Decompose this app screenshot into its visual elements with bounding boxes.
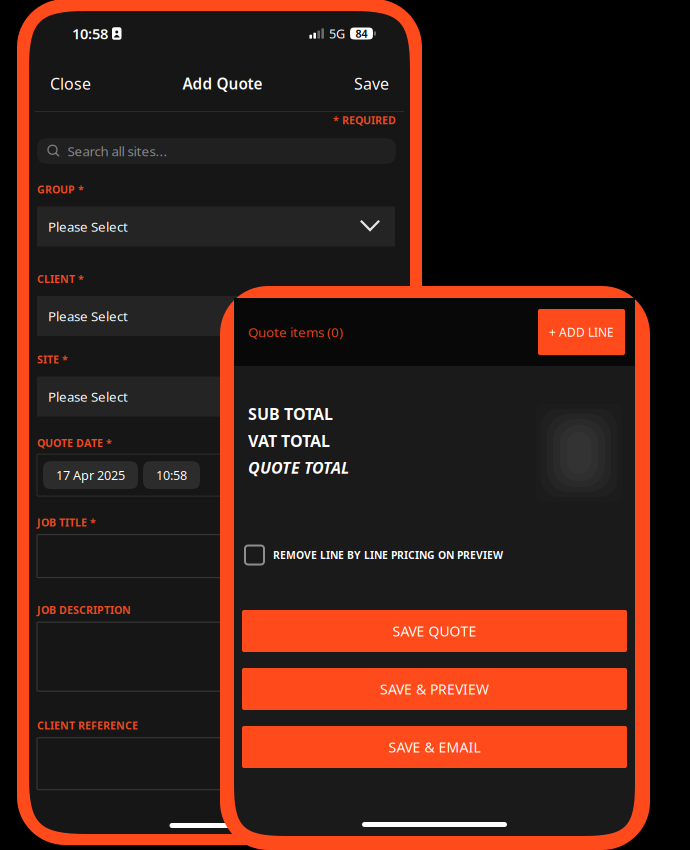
staticText: 5G xyxy=(329,25,345,42)
button[interactable]: Save xyxy=(348,64,395,103)
staticText: * REQUIRED xyxy=(333,113,396,127)
staticText: Quote items (0) xyxy=(248,323,343,341)
staticText: 84 xyxy=(355,26,367,41)
staticText: SAVE QUOTE xyxy=(392,621,476,641)
button[interactable] xyxy=(37,622,395,691)
staticText: VAT TOTAL xyxy=(248,430,330,452)
button[interactable]: 17 Apr 2025 xyxy=(43,461,138,489)
button[interactable]: + ADD LINE xyxy=(538,309,625,355)
button[interactable]: SAVE & PREVIEW xyxy=(242,668,627,710)
staticText: JOB TITLE xyxy=(37,515,87,530)
staticText: SUB TOTAL xyxy=(248,403,333,425)
staticText: Please Select xyxy=(48,387,128,406)
button[interactable] xyxy=(37,738,395,790)
staticText: Close xyxy=(50,73,91,94)
staticText: SAVE & EMAIL xyxy=(388,737,480,757)
staticText: * xyxy=(90,515,96,530)
button[interactable]: SAVE & EMAIL xyxy=(242,726,627,768)
staticText: 10:58 xyxy=(72,23,108,43)
staticText: JOB DESCRIPTION xyxy=(37,603,131,617)
staticText: Please Select xyxy=(48,217,128,236)
staticText: 17 Apr 2025 xyxy=(56,466,125,484)
button[interactable]: Please Select xyxy=(37,296,395,336)
staticText: REMOVE LINE BY LINE PRICING ON PREVIEW xyxy=(273,548,503,562)
button[interactable] xyxy=(37,535,395,578)
staticText: * xyxy=(78,182,84,196)
button[interactable]: Please Select xyxy=(37,206,395,246)
staticText: 10:58 xyxy=(156,466,187,484)
button[interactable]: REMOVE LINE BY LINE PRICING ON PREVIEW xyxy=(234,535,635,575)
staticText: * xyxy=(106,436,112,450)
staticText: CLIENT REFERENCE xyxy=(37,718,138,733)
staticText: SAVE & PREVIEW xyxy=(380,679,489,699)
staticText: SITE xyxy=(37,352,59,367)
button[interactable]: Please Select xyxy=(37,377,395,417)
button[interactable]: 10:58 xyxy=(143,461,200,489)
staticText: * xyxy=(78,271,84,286)
staticText: Save xyxy=(354,73,389,94)
staticText: QUOTE TOTAL xyxy=(248,457,349,478)
staticText: Search all sites... xyxy=(67,142,167,160)
staticText: Add Quote xyxy=(182,73,262,94)
staticText: * xyxy=(62,352,68,367)
staticText: GROUP xyxy=(37,182,75,196)
staticText: + ADD LINE xyxy=(549,324,614,340)
staticText: CLIENT xyxy=(37,271,75,286)
staticText: Please Select xyxy=(48,307,128,325)
button[interactable]: SAVE QUOTE xyxy=(242,610,627,652)
staticText: QUOTE DATE xyxy=(37,436,103,450)
button[interactable]: Close xyxy=(44,64,97,103)
